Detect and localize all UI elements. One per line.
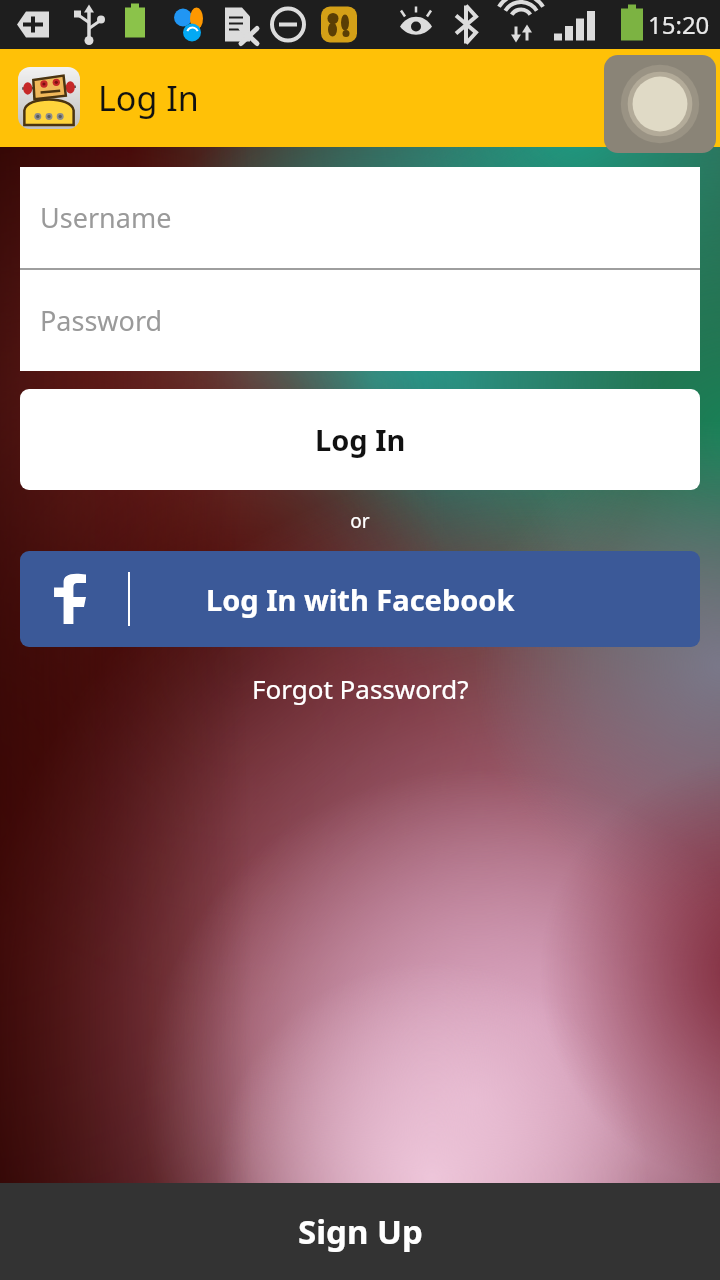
staticText: Username <box>40 199 172 236</box>
staticText: Log In <box>98 75 199 121</box>
staticText: Sign Up <box>298 1209 423 1254</box>
button[interactable]: Username <box>20 167 700 268</box>
staticText: Log In with Facebook <box>206 580 515 619</box>
staticText: or <box>0 508 720 534</box>
staticText: Password <box>40 302 163 339</box>
button[interactable]: Log In with Facebook <box>20 551 700 647</box>
button[interactable]: Sign Up <box>0 1183 720 1280</box>
button[interactable]: Forgot Password? <box>238 665 483 712</box>
button[interactable]: Password <box>20 270 700 371</box>
staticText: Forgot Password? <box>252 671 469 706</box>
button[interactable]: Profile <box>604 55 716 153</box>
button[interactable]: Log In <box>20 389 700 490</box>
staticText: Log In <box>315 420 406 459</box>
staticText: 15:20 <box>648 8 710 41</box>
